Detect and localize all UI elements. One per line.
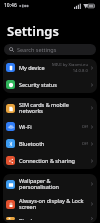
staticText: Wi-Fi	[19, 123, 81, 130]
staticText: Off	[81, 124, 88, 130]
button[interactable]: Display	[3, 214, 97, 223]
button[interactable]: Search settings	[4, 44, 96, 55]
button[interactable]: Wallpaper & personalisation	[3, 174, 97, 194]
staticText: Wallpaper & personalisation	[19, 177, 90, 191]
staticText: Security status	[19, 81, 90, 88]
button[interactable]: Security status	[3, 76, 97, 93]
button[interactable]: SIM cards & mobile networks	[3, 98, 97, 118]
staticText: Settings	[7, 22, 59, 40]
staticText: Display	[19, 217, 90, 220]
staticText: SIM cards & mobile networks	[19, 101, 90, 115]
button[interactable]: Wi-Fi	[3, 118, 97, 135]
button[interactable]: My device	[3, 59, 97, 76]
staticText: Connection & sharing	[19, 157, 90, 164]
staticText: MIUI by Xiaomi.eu 14.0.8.0	[52, 62, 88, 73]
staticText: My device	[19, 64, 52, 71]
button[interactable]: Always-on display & Lock screen	[3, 194, 97, 214]
button[interactable]: Connection & sharing	[3, 152, 97, 169]
staticText: Always-on display & Lock screen	[19, 197, 90, 211]
staticText: Off	[81, 141, 88, 147]
button[interactable]: Bluetooth	[3, 135, 97, 152]
staticText: 10:46	[4, 2, 17, 9]
staticText: Search settings	[17, 46, 57, 53]
staticText: Bluetooth	[19, 140, 81, 147]
